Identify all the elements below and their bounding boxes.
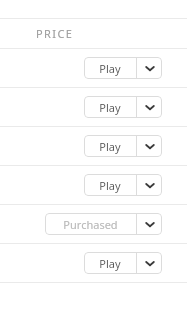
button[interactable]: Play	[84, 174, 136, 196]
button[interactable]: Purchased	[45, 213, 136, 235]
staticText: Purchased	[63, 217, 118, 232]
button[interactable]: Show more options	[137, 57, 162, 79]
button[interactable]: Play	[84, 252, 136, 274]
button[interactable]: Play	[84, 57, 136, 79]
staticText: Play	[99, 256, 121, 271]
button[interactable]: Show more options	[137, 213, 162, 235]
button[interactable]: Show more options	[137, 174, 162, 196]
staticText: Play	[99, 61, 121, 76]
button[interactable]: Show more options	[137, 96, 162, 118]
button[interactable]: Play	[84, 135, 136, 157]
button[interactable]: Play	[84, 96, 136, 118]
staticText: Play	[99, 100, 121, 115]
staticText: PRICE	[36, 26, 74, 41]
button[interactable]: Show more options	[137, 135, 162, 157]
button[interactable]: Show more options	[137, 252, 162, 274]
staticText: Play	[99, 178, 121, 193]
staticText: Play	[99, 139, 121, 154]
